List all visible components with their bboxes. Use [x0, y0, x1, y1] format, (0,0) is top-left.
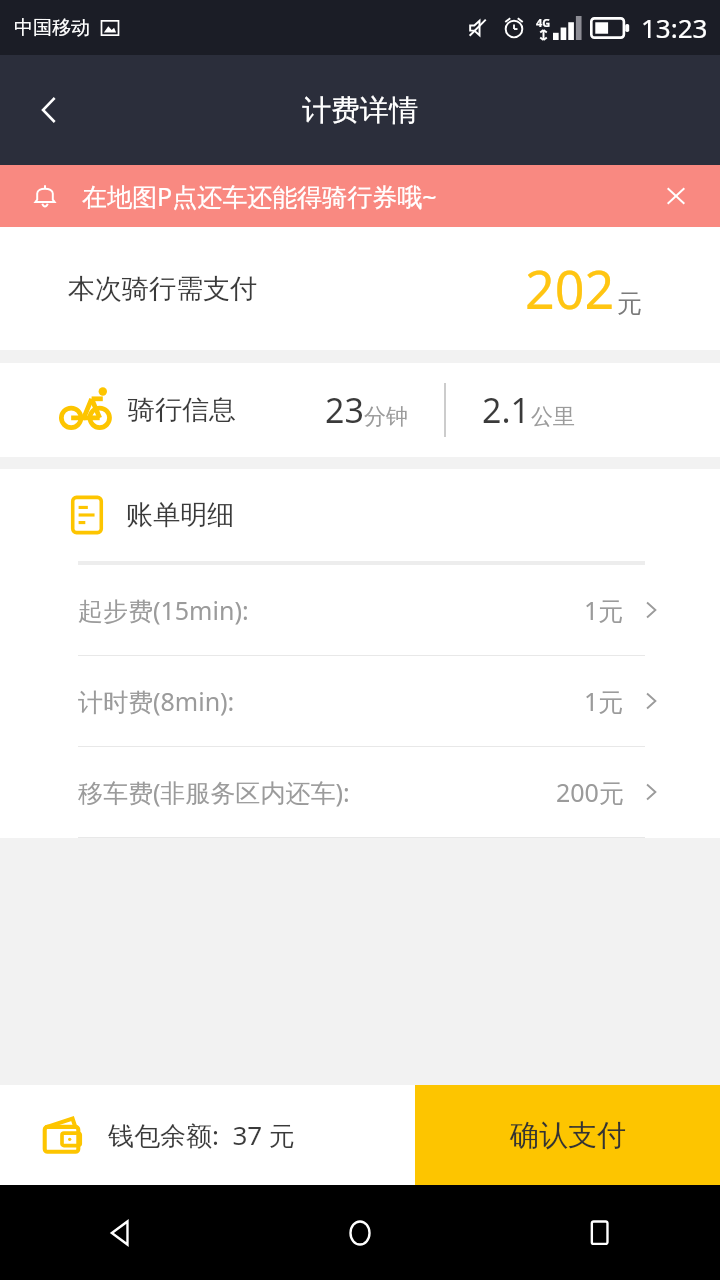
staticText: 1元	[584, 593, 624, 627]
staticText: 1元	[584, 684, 624, 718]
button[interactable]: 计时费(8min):	[0, 656, 720, 746]
staticText: 202	[525, 253, 615, 324]
staticText: 13:23	[641, 10, 708, 45]
button[interactable]: 移车费(非服务区内还车):	[0, 747, 720, 837]
button[interactable]: Recents	[480, 1185, 720, 1280]
button[interactable]: 账单明细	[0, 469, 720, 561]
staticText: 公里	[531, 403, 575, 431]
button[interactable]: Home	[240, 1185, 480, 1280]
staticText: 本次骑行需支付	[68, 272, 257, 306]
button[interactable]: Back	[18, 79, 80, 141]
staticText: 确认支付	[510, 1117, 626, 1154]
staticText: 钱包余额: 37 元	[108, 1117, 295, 1153]
staticText: 中国移动	[14, 16, 90, 40]
staticText: 4G	[536, 15, 551, 30]
staticText: 在地图P点还车还能得骑行券哦~	[82, 179, 437, 213]
staticText: 23	[325, 387, 364, 433]
staticText: 骑行信息	[128, 393, 236, 427]
button[interactable]: 骑行信息	[0, 363, 720, 457]
button[interactable]: Close banner	[650, 170, 702, 222]
staticText: 账单明细	[126, 498, 234, 532]
button[interactable]: Back	[0, 1185, 240, 1280]
staticText: 起步费(15min):	[78, 593, 249, 627]
staticText: 元	[617, 288, 642, 319]
staticText: 200元	[556, 775, 624, 809]
staticText: 计时费(8min):	[78, 684, 235, 718]
staticText: 分钟	[364, 403, 408, 431]
button[interactable]: 起步费(15min):	[0, 565, 720, 655]
staticText: 计费详情	[302, 92, 418, 129]
button[interactable]: 确认支付	[415, 1085, 720, 1185]
staticText: 移车费(非服务区内还车):	[78, 775, 350, 809]
staticText: 2.1	[482, 387, 531, 433]
button[interactable]: 钱包余额: 37 元	[0, 1085, 415, 1185]
